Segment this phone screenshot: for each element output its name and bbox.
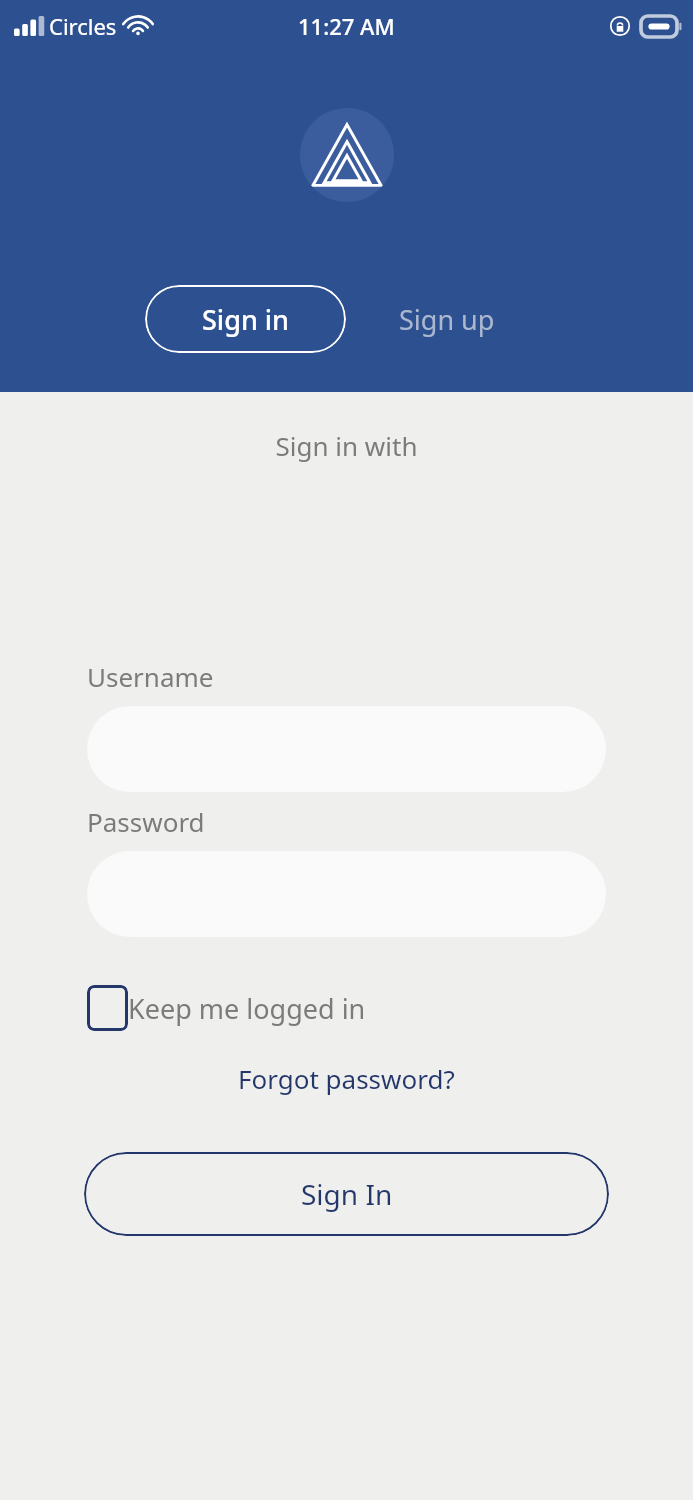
other: Rotation lock [609,15,631,37]
staticText: Username [87,659,693,694]
button[interactable]: Keep me logged in [87,985,366,1031]
other: Battery [641,16,681,37]
button[interactable]: Forgot password? [24,1061,669,1096]
staticText: Forgot password? [238,1061,455,1096]
button[interactable]: Sign up [346,285,548,353]
staticText: Sign in [202,301,290,338]
other: App logo [314,122,380,188]
staticText: Keep me logged in [128,990,366,1027]
staticText: Sign in with [24,428,669,463]
staticText: Circles [49,11,117,41]
staticText: Password [87,804,693,839]
staticText: 11:27 AM [298,11,395,41]
button[interactable]: Sign In [84,1152,609,1236]
button[interactable]: Sign in [145,285,346,353]
staticText: Sign In [301,1175,393,1213]
staticText: Sign up [399,301,495,338]
